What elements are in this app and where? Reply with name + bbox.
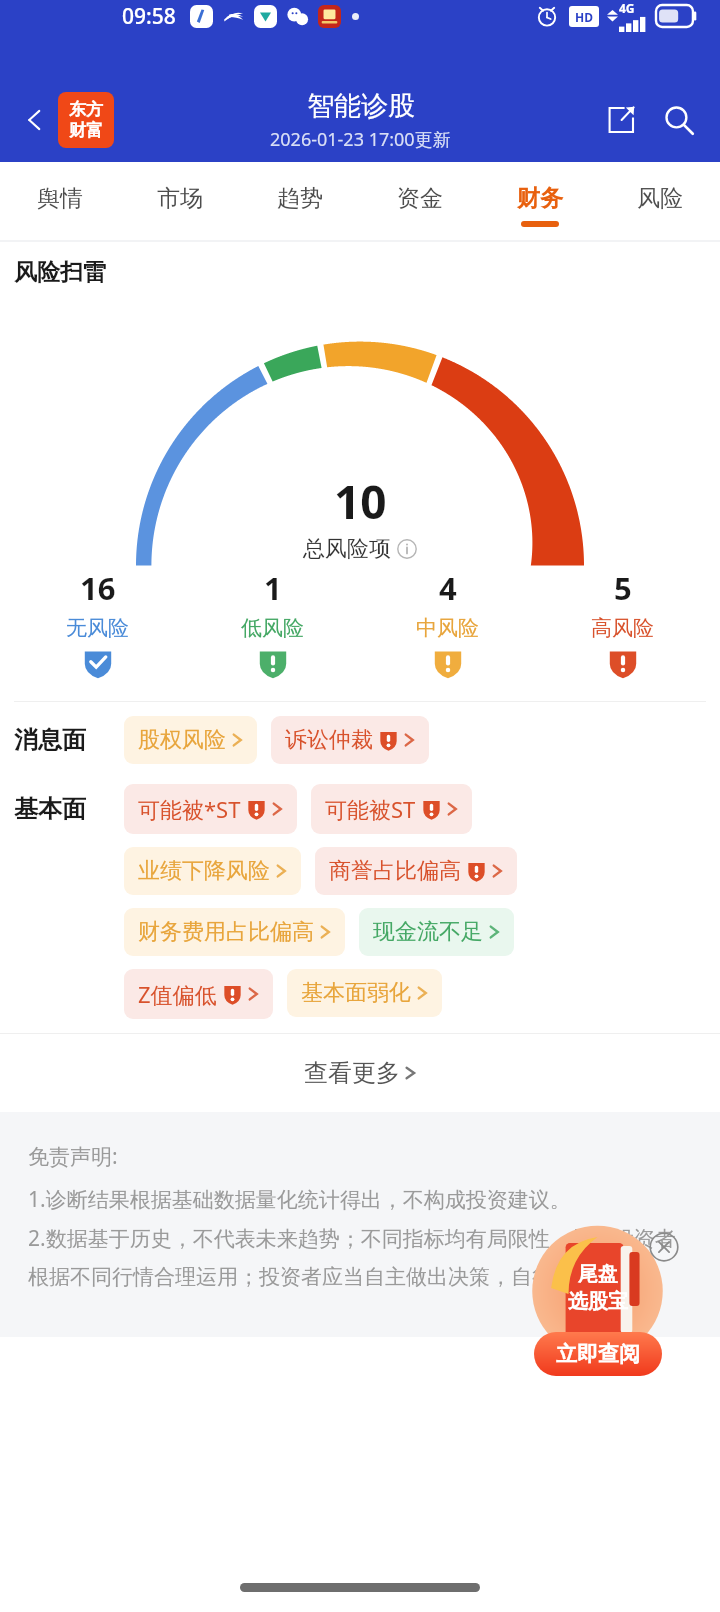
button[interactable]: 风险: [600, 162, 720, 240]
button[interactable]: 可能被*ST: [124, 784, 297, 834]
staticText: 可能被*ST: [138, 794, 241, 824]
staticText: 4G: [619, 0, 635, 16]
button[interactable]: 股权风险: [124, 716, 257, 764]
button[interactable]: 16: [10, 567, 185, 679]
staticText: 4: [439, 567, 457, 609]
button[interactable]: 立即查阅: [534, 1332, 662, 1376]
button[interactable]: Z值偏低: [124, 969, 273, 1019]
button[interactable]: 资金: [360, 162, 480, 240]
staticText: 资金: [397, 184, 443, 213]
button[interactable]: 东方: [58, 92, 114, 148]
button[interactable]: Close ad: [647, 1230, 681, 1264]
button[interactable]: 1: [185, 567, 360, 679]
button[interactable]: Back: [8, 93, 62, 147]
staticText: 智能诊股: [307, 89, 415, 123]
staticText: 16: [80, 567, 116, 609]
staticText: 风险: [637, 184, 683, 213]
button[interactable]: 可能被ST: [311, 784, 472, 834]
button[interactable]: 5: [535, 567, 710, 679]
staticText: Z值偏低: [138, 979, 217, 1009]
staticText: 消息面: [14, 725, 124, 755]
button[interactable]: Search: [652, 93, 706, 147]
staticText: 东方: [69, 99, 103, 120]
staticText: 财务费用占比偏高: [138, 918, 314, 946]
staticText: 2026-01-23 17:00更新: [270, 127, 451, 152]
staticText: 10: [334, 470, 387, 533]
staticText: 业绩下降风险: [138, 857, 270, 885]
staticText: 选股宝: [568, 1289, 628, 1314]
staticText: 风险扫雷: [14, 258, 106, 287]
staticText: 现金流不足: [373, 918, 483, 946]
button[interactable]: 财务费用占比偏高: [124, 908, 345, 956]
staticText: 低风险: [241, 615, 304, 641]
staticText: 商誉占比偏高: [329, 857, 461, 885]
staticText: 中风险: [416, 615, 479, 641]
button[interactable]: Share: [594, 93, 648, 147]
staticText: 基本面: [14, 794, 124, 824]
button[interactable]: 业绩下降风险: [124, 847, 301, 895]
staticText: 09:58: [122, 2, 176, 31]
staticText: 1.诊断结果根据基础数据量化统计得出，不构成投资建议。: [28, 1185, 571, 1214]
staticText: 趋势: [277, 184, 323, 213]
staticText: 5: [614, 567, 632, 609]
staticText: 可能被ST: [325, 794, 416, 824]
staticText: 免责声明:: [28, 1142, 118, 1171]
staticText: 股权风险: [138, 726, 226, 754]
staticText: 1: [264, 567, 282, 609]
button[interactable]: 4: [360, 567, 535, 679]
staticText: 查看更多: [304, 1058, 400, 1088]
staticText: 市场: [157, 184, 203, 213]
staticText: 舆情: [37, 184, 83, 213]
staticText: 财富: [69, 120, 103, 141]
button[interactable]: 财务: [480, 162, 600, 240]
button[interactable]: 现金流不足: [359, 908, 514, 956]
button[interactable]: 舆情: [0, 162, 120, 240]
button[interactable]: 诉讼仲裁: [271, 716, 429, 764]
staticText: 总风险项: [303, 535, 391, 563]
button[interactable]: 商誉占比偏高: [315, 847, 517, 895]
button[interactable]: 市场: [120, 162, 240, 240]
staticText: 诉讼仲裁: [285, 726, 373, 754]
button[interactable]: 基本面弱化: [287, 969, 442, 1017]
button[interactable]: 查看更多: [0, 1034, 720, 1112]
staticText: 基本面弱化: [301, 979, 411, 1007]
button[interactable]: 趋势: [240, 162, 360, 240]
staticText: HD: [575, 9, 593, 25]
staticText: 尾盘: [578, 1262, 618, 1287]
staticText: 立即查阅: [556, 1341, 640, 1367]
staticText: 高风险: [591, 615, 654, 641]
staticText: 2.数据基于历史，不代表未来趋势；不同指标均有局限性，需要投资者根据不同行情合理…: [28, 1224, 696, 1291]
staticText: 无风险: [66, 615, 129, 641]
staticText: 财务: [517, 184, 563, 213]
